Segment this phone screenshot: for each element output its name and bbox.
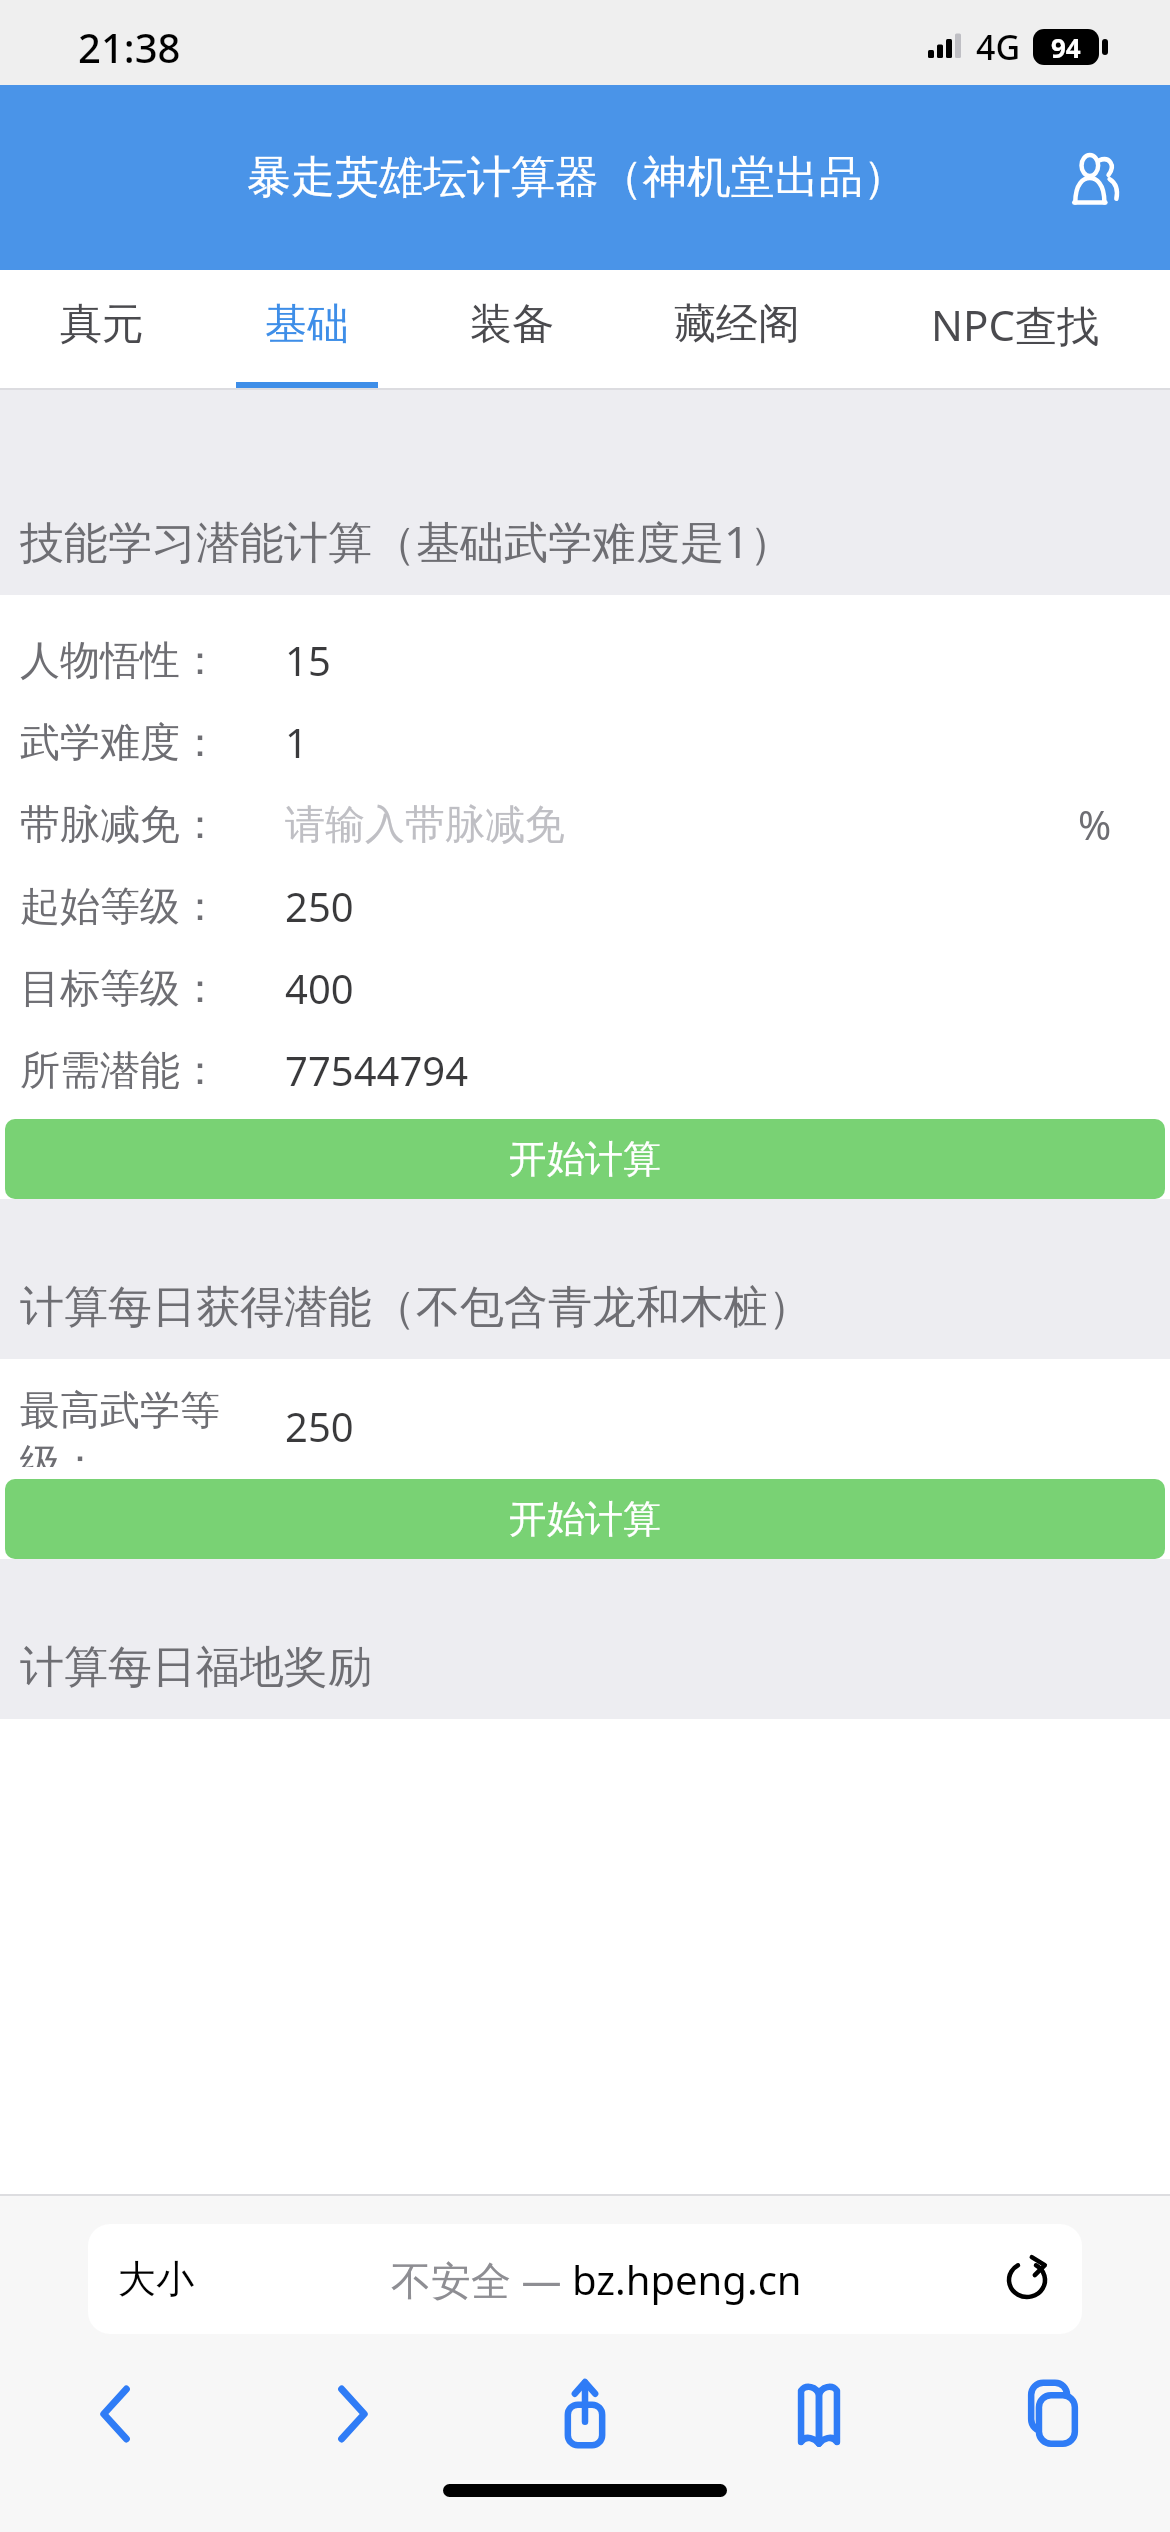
staticText: bz.hpeng.cn xyxy=(572,2252,802,2306)
staticText: 400 xyxy=(285,961,1170,1015)
staticText: 请输入带脉减免 xyxy=(285,799,1078,849)
button[interactable]: 基础 xyxy=(204,270,409,390)
staticText: 计算每日福地奖励 xyxy=(20,1640,372,1695)
staticText: 基础 xyxy=(265,298,349,351)
staticText: 装备 xyxy=(470,298,554,351)
staticText: 大小 xyxy=(118,2255,194,2303)
staticText: 开始计算 xyxy=(509,1135,661,1183)
button[interactable]: 藏经阁 xyxy=(614,270,860,390)
button[interactable]: Back xyxy=(0,2364,234,2464)
button[interactable]: 武学难度： xyxy=(0,701,1170,783)
staticText: % xyxy=(1078,797,1112,851)
staticText: 最高武学等级： xyxy=(20,1385,285,1467)
button[interactable]: 大小 xyxy=(88,2224,1082,2334)
staticText: 目标等级： xyxy=(20,963,220,1013)
button[interactable]: 最高武学等级： xyxy=(0,1385,1170,1467)
staticText: 暴走英雄坛计算器（神机堂出品） xyxy=(247,150,907,205)
staticText: 250 xyxy=(285,1399,1170,1453)
button[interactable]: 开始计算 xyxy=(5,1119,1165,1199)
staticText: 不安全 — xyxy=(391,2252,572,2307)
button[interactable]: 真元 xyxy=(0,270,204,390)
staticText: 真元 xyxy=(60,298,144,351)
button[interactable]: NPC查找 xyxy=(860,270,1170,390)
staticText: 250 xyxy=(285,879,1170,933)
staticText: 1 xyxy=(285,715,1170,769)
button[interactable]: Tabs xyxy=(936,2364,1170,2464)
staticText: 起始等级： xyxy=(20,881,220,931)
button[interactable]: Reload xyxy=(998,2250,1056,2308)
button[interactable]: Share xyxy=(468,2364,702,2464)
button[interactable]: Bookmarks xyxy=(702,2364,936,2464)
staticText: 开始计算 xyxy=(509,1495,661,1543)
staticText: 21:38 xyxy=(78,20,181,74)
staticText: 技能学习潜能计算（基础武学难度是1） xyxy=(20,511,794,571)
staticText: 15 xyxy=(285,633,1170,687)
staticText: 94 xyxy=(1051,30,1081,65)
button[interactable]: 开始计算 xyxy=(5,1479,1165,1559)
button[interactable]: Account xyxy=(1058,142,1130,214)
button[interactable]: Forward xyxy=(234,2364,468,2464)
staticText: NPC查找 xyxy=(931,296,1099,353)
button[interactable]: 装备 xyxy=(409,270,614,390)
staticText: 带脉减免： xyxy=(20,799,220,849)
staticText: 所需潜能： xyxy=(20,1045,220,1095)
staticText: 4G xyxy=(976,24,1021,70)
button[interactable]: 人物悟性： xyxy=(0,619,1170,701)
button[interactable]: 目标等级： xyxy=(0,947,1170,1029)
button[interactable]: 起始等级： xyxy=(0,865,1170,947)
staticText: 77544794 xyxy=(285,1043,1170,1097)
staticText: 藏经阁 xyxy=(674,298,800,351)
staticText: 武学难度： xyxy=(20,717,220,767)
staticText: 计算每日获得潜能（不包含青龙和木桩） xyxy=(20,1280,812,1335)
button[interactable]: 所需潜能： xyxy=(0,1029,1170,1111)
staticText: 人物悟性： xyxy=(20,635,220,685)
button[interactable]: 带脉减免： xyxy=(0,783,1170,865)
